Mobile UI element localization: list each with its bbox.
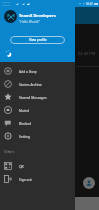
staticText: TeamX Developers	[19, 13, 56, 18]
staticText: Stories Archive	[19, 82, 42, 86]
staticText: Blocked	[19, 121, 32, 125]
staticText: Add a Story	[19, 69, 37, 73]
staticText: QR	[19, 164, 24, 168]
button[interactable]: QR	[0, 159, 75, 172]
staticText: Sign out	[19, 177, 32, 181]
button[interactable]: Add a Story	[0, 64, 75, 77]
button[interactable]: Profile photo	[4, 10, 17, 23]
staticText: "Hello World!"	[19, 20, 40, 24]
staticText: 04:40 PM	[78, 51, 96, 56]
staticText: Others	[4, 150, 15, 154]
staticText: Muted	[19, 108, 30, 112]
staticText: Starred Messages	[19, 95, 47, 99]
button[interactable]: Setting	[0, 129, 75, 142]
button[interactable]: Stories Archive	[0, 77, 75, 90]
staticText: View profile	[29, 38, 47, 42]
button[interactable]: Muted	[0, 103, 75, 116]
button[interactable]: Sign out	[0, 172, 75, 185]
button[interactable]: Dark mode	[4, 49, 14, 59]
staticText: 04:40	[86, 2, 93, 6]
staticText: Android	[2, 1, 11, 4]
button[interactable]: Starred Messages	[0, 90, 75, 103]
button[interactable]: View profile	[10, 36, 65, 44]
button[interactable]: New chat	[83, 177, 95, 189]
staticText: System	[2, 4, 10, 7]
button[interactable]: Blocked	[0, 116, 75, 129]
staticText: Setting	[19, 134, 30, 138]
